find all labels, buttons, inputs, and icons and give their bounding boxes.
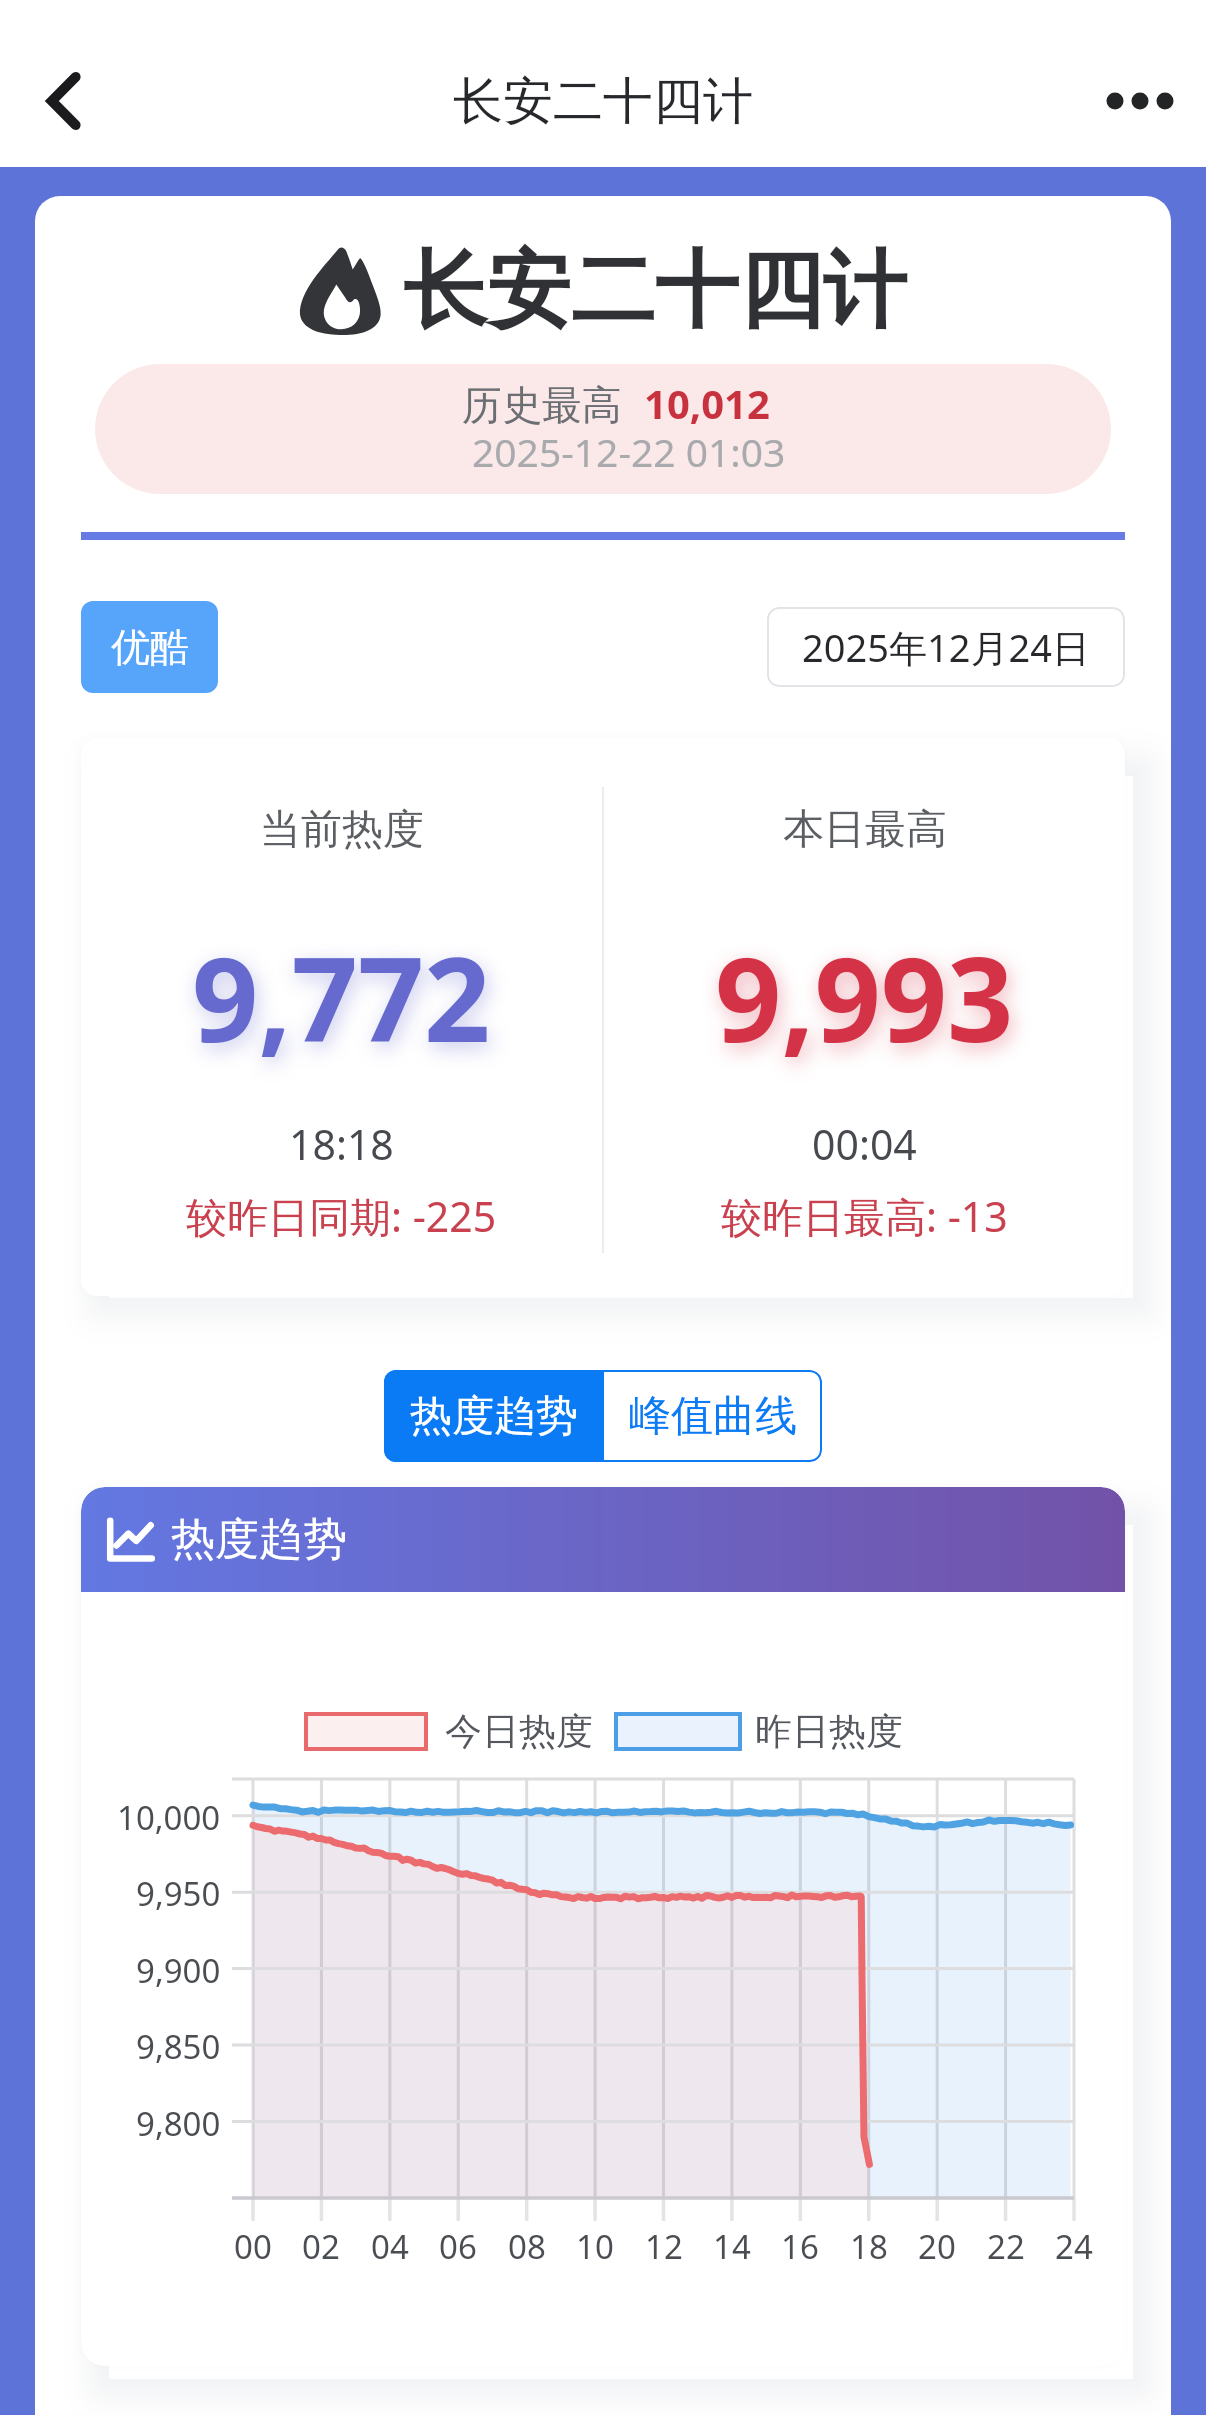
staticText: 昨日热度: [755, 1708, 903, 1755]
staticText: 14: [713, 2224, 751, 2269]
button[interactable]: More options: [1085, 46, 1195, 156]
staticText: 10: [576, 2224, 614, 2269]
staticText: 12: [645, 2224, 683, 2269]
staticText: 18:18: [289, 1116, 394, 1172]
staticText: 今日热度: [445, 1708, 593, 1755]
staticText: 9,900: [136, 1948, 221, 1993]
button[interactable]: 峰值曲线: [604, 1370, 822, 1462]
staticText: 9,772: [192, 918, 491, 1076]
staticText: 02: [302, 2224, 340, 2269]
staticText: 06: [439, 2224, 477, 2269]
staticText: 9,800: [136, 2101, 221, 2146]
staticText: 16: [781, 2224, 819, 2269]
button[interactable]: 2025年12月24日: [767, 607, 1125, 687]
staticText: 峰值曲线: [629, 1390, 797, 1443]
staticText: 2025-12-22 01:03: [472, 425, 786, 478]
staticText: 较昨日最高: -13: [721, 1188, 1008, 1244]
staticText: 22: [987, 2224, 1025, 2269]
staticText: 较昨日同期: -225: [186, 1188, 497, 1244]
staticText: 20: [918, 2224, 956, 2269]
staticText: 04: [371, 2224, 409, 2269]
staticText: 9,950: [136, 1871, 221, 1916]
staticText: 长安二十四计: [453, 70, 753, 133]
staticText: 00:04: [812, 1116, 917, 1172]
button[interactable]: Back: [9, 46, 119, 156]
staticText: 08: [508, 2224, 546, 2269]
staticText: 10,000: [117, 1795, 221, 1840]
button[interactable]: 热度趋势: [384, 1370, 604, 1462]
staticText: 热度趋势: [410, 1390, 578, 1443]
staticText: 本日最高: [783, 804, 947, 856]
staticText: 优酷: [111, 623, 189, 672]
staticText: 9,993: [715, 918, 1014, 1076]
staticText: 10,012: [644, 376, 770, 430]
staticText: 18: [850, 2224, 888, 2269]
staticText: 2025年12月24日: [802, 621, 1090, 673]
staticText: 24: [1055, 2224, 1093, 2269]
staticText: 9,850: [136, 2024, 221, 2069]
staticText: 00: [234, 2224, 272, 2269]
staticText: 热度趋势: [171, 1512, 347, 1567]
staticText: 长安二十四计: [403, 238, 907, 344]
button[interactable]: 优酷: [81, 601, 218, 693]
staticText: 历史最高: [462, 380, 622, 430]
staticText: 当前热度: [260, 804, 424, 856]
